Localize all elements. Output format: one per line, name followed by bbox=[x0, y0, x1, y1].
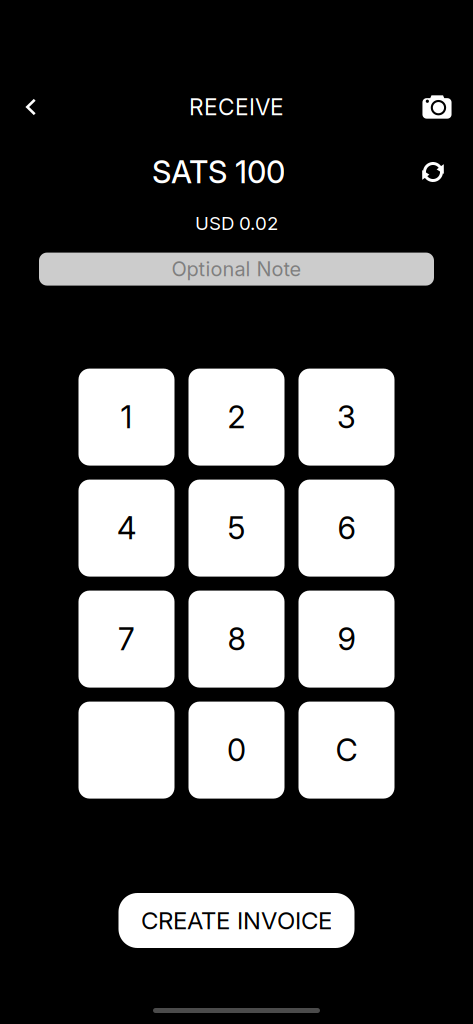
staticText: USD 0.02 bbox=[195, 212, 278, 235]
button[interactable]: Refresh bbox=[411, 150, 455, 194]
staticText: 5 bbox=[227, 509, 245, 547]
staticText: C bbox=[335, 731, 357, 769]
staticText: RECEIVE bbox=[189, 93, 284, 121]
button[interactable]: Scan QR code bbox=[414, 85, 460, 129]
button[interactable]: 1 bbox=[78, 369, 174, 466]
staticText: 6 bbox=[337, 509, 355, 547]
button[interactable]: Optional Note bbox=[39, 253, 434, 286]
button[interactable]: C bbox=[298, 702, 394, 799]
button[interactable]: 3 bbox=[298, 369, 394, 466]
button[interactable]: 9 bbox=[298, 591, 394, 688]
button[interactable]: blank bbox=[78, 702, 174, 799]
staticText: 8 bbox=[227, 620, 245, 658]
button[interactable]: 8 bbox=[188, 591, 284, 688]
staticText: 1 bbox=[120, 398, 132, 436]
button[interactable]: 5 bbox=[188, 480, 284, 577]
staticText: CREATE INVOICE bbox=[141, 906, 332, 935]
button[interactable]: 7 bbox=[78, 591, 174, 688]
staticText: 3 bbox=[337, 398, 356, 436]
button[interactable]: 2 bbox=[188, 369, 284, 466]
button[interactable]: Back bbox=[8, 85, 54, 129]
staticText: Optional Note bbox=[171, 257, 301, 281]
button[interactable]: 4 bbox=[78, 480, 174, 577]
staticText: 9 bbox=[337, 620, 355, 658]
button[interactable]: 0 bbox=[188, 702, 284, 799]
staticText: 0 bbox=[227, 731, 246, 769]
staticText: 4 bbox=[117, 509, 136, 547]
button[interactable]: CREATE INVOICE bbox=[118, 893, 354, 948]
staticText: SATS 100 bbox=[152, 153, 285, 190]
button[interactable]: 6 bbox=[298, 480, 394, 577]
staticText: 7 bbox=[118, 620, 135, 658]
staticText: 2 bbox=[227, 398, 245, 436]
